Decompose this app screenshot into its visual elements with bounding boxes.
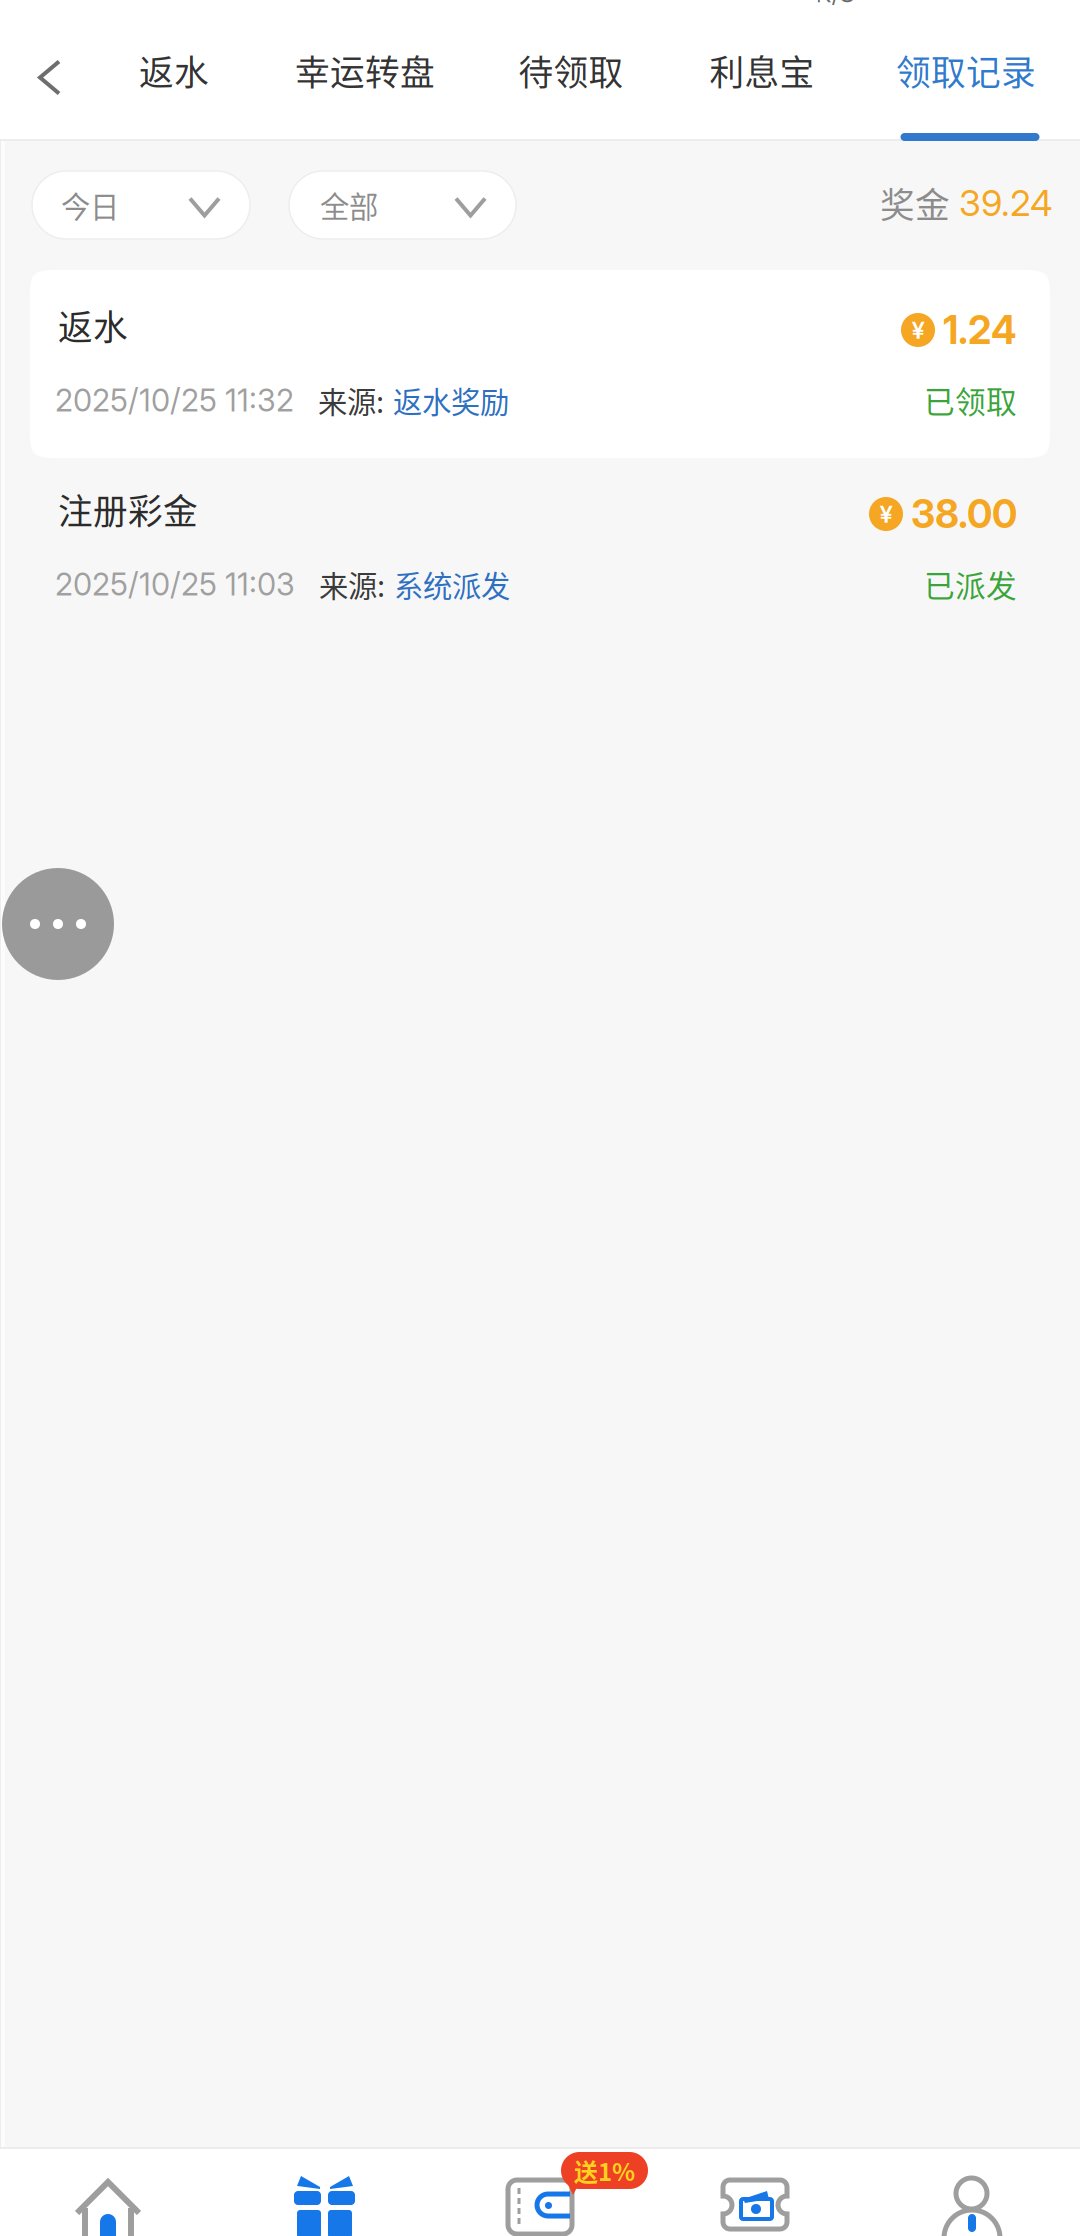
- button[interactable]: More: [2, 868, 114, 980]
- staticText: ¥: [879, 499, 892, 528]
- button[interactable]: 待领取: [471, 0, 671, 139]
- staticText: 系统派发: [394, 563, 510, 605]
- staticText: 待领取: [518, 45, 623, 96]
- staticText: 来源:: [319, 563, 385, 605]
- staticText: 返水: [139, 45, 209, 96]
- staticText: 领取记录: [896, 45, 1036, 96]
- button[interactable]: Profile: [941, 2176, 1003, 2236]
- button[interactable]: Home: [74, 2177, 142, 2236]
- button[interactable]: 返水: [74, 0, 274, 139]
- button[interactable]: 返水: [30, 270, 1050, 458]
- staticText: 利息宝: [709, 45, 814, 96]
- staticText: 全部: [320, 184, 378, 226]
- button[interactable]: 注册彩金: [30, 454, 1050, 642]
- staticText: 已领取: [924, 378, 1017, 422]
- button[interactable]: Wallet: [506, 2178, 576, 2236]
- staticText: 返水奖励: [393, 379, 509, 421]
- button[interactable]: 全部: [289, 171, 516, 239]
- button[interactable]: 利息宝: [662, 0, 862, 139]
- staticText: K/S: [815, 0, 854, 8]
- staticText: 1.24: [943, 307, 1017, 353]
- button[interactable]: Rewards: [294, 2176, 356, 2236]
- staticText: 来源:: [318, 379, 384, 421]
- staticText: 39.24: [959, 181, 1053, 225]
- staticText: ¥: [911, 315, 924, 344]
- button[interactable]: Coupons: [721, 2178, 791, 2236]
- staticText: 注册彩金: [58, 484, 198, 534]
- staticText: 幸运转盘: [295, 45, 435, 96]
- staticText: 38.00: [911, 491, 1017, 537]
- staticText: 送1%: [574, 2153, 635, 2188]
- staticText: 奖金: [880, 178, 950, 228]
- staticText: 今日: [61, 184, 119, 226]
- button[interactable]: 领取记录: [866, 0, 1066, 139]
- button[interactable]: 幸运转盘: [265, 0, 465, 139]
- button[interactable]: Back: [2, 8, 98, 147]
- staticText: 已派发: [924, 562, 1017, 606]
- staticText: 2025/10/25 11:32: [55, 382, 294, 419]
- staticText: 返水: [58, 300, 128, 350]
- staticText: 2025/10/25 11:03: [55, 566, 295, 603]
- button[interactable]: 今日: [32, 171, 250, 239]
